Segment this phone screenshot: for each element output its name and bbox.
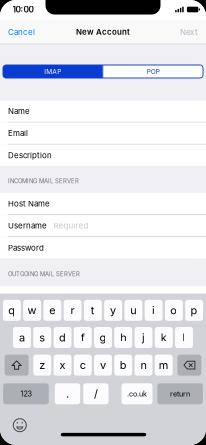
button[interactable]: f — [74, 327, 92, 348]
button[interactable]: p — [185, 300, 203, 321]
staticText: New Account — [76, 27, 130, 37]
staticText: OUTGOING MAIL SERVER — [8, 271, 80, 278]
staticText: j — [142, 331, 145, 344]
button[interactable]: Password — [0, 237, 206, 258]
button[interactable]: Emoji keyboard — [10, 415, 30, 435]
button[interactable]: . — [55, 383, 80, 404]
button[interactable]: Delete — [177, 355, 201, 376]
button[interactable]: w — [23, 300, 41, 321]
button[interactable]: POP — [103, 65, 203, 78]
button[interactable]: l — [175, 327, 193, 348]
staticText: b — [120, 358, 127, 372]
button[interactable]: d — [53, 327, 71, 348]
button[interactable]: s — [33, 327, 51, 348]
staticText: q — [8, 304, 15, 317]
staticText: / — [94, 387, 98, 400]
staticText: 10:00 — [12, 4, 33, 14]
button[interactable]: z — [33, 355, 51, 376]
staticText: Email — [8, 128, 28, 138]
staticText: k — [161, 331, 167, 344]
staticText: o — [170, 304, 177, 317]
button[interactable]: .co.uk — [121, 383, 152, 404]
staticText: w — [28, 304, 37, 317]
button[interactable]: r — [64, 300, 82, 321]
button[interactable]: / — [83, 383, 108, 404]
staticText: t — [91, 304, 95, 317]
staticText: IMAP — [44, 67, 61, 75]
staticText: .co.uk — [127, 389, 147, 398]
button[interactable]: IMAP — [3, 65, 102, 78]
staticText: n — [140, 358, 146, 372]
staticText: e — [49, 304, 55, 317]
staticText: c — [80, 358, 86, 372]
button[interactable]: x — [54, 355, 71, 376]
staticText: Username — [8, 221, 47, 230]
staticText: Required — [53, 221, 88, 230]
staticText: v — [100, 358, 106, 372]
staticText: a — [19, 331, 25, 344]
staticText: return — [170, 389, 190, 398]
staticText: p — [191, 304, 198, 317]
staticText: f — [81, 331, 85, 344]
staticText: h — [120, 331, 126, 344]
staticText: Host Name — [8, 292, 50, 302]
staticText: Password — [8, 243, 44, 252]
staticText: POP — [147, 67, 160, 75]
staticText: u — [130, 304, 136, 317]
button[interactable]: c — [74, 355, 92, 376]
button[interactable]: Name — [0, 100, 206, 122]
staticText: Cancel — [8, 27, 35, 37]
button[interactable]: Email — [0, 123, 206, 144]
button[interactable]: Next — [170, 20, 198, 44]
button[interactable]: m — [155, 355, 173, 376]
button[interactable]: e — [43, 300, 61, 321]
button[interactable]: i — [145, 300, 163, 321]
staticText: l — [182, 331, 185, 344]
staticText: r — [71, 304, 75, 317]
staticText: x — [59, 358, 65, 372]
button[interactable]: t — [84, 300, 102, 321]
button[interactable]: Shift — [5, 355, 29, 376]
staticText: y — [110, 304, 116, 317]
button[interactable]: 123 — [3, 383, 49, 404]
staticText: z — [39, 358, 45, 372]
staticText: g — [99, 331, 106, 344]
staticText: . — [66, 387, 69, 400]
button[interactable]: b — [114, 355, 132, 376]
staticText: Host Name — [8, 199, 50, 208]
button[interactable]: a — [13, 327, 31, 348]
button[interactable]: Cancel — [8, 20, 44, 44]
staticText: INCOMING MAIL SERVER — [8, 178, 79, 185]
button[interactable]: h — [114, 327, 132, 348]
staticText: s — [39, 331, 45, 344]
staticText: 123 — [20, 389, 31, 398]
button[interactable]: y — [104, 300, 122, 321]
staticText: d — [59, 331, 66, 344]
button[interactable]: Host Name — [0, 193, 206, 214]
button[interactable]: n — [135, 355, 152, 376]
staticText: i — [152, 304, 155, 317]
button[interactable]: return — [157, 383, 203, 404]
button[interactable]: q — [3, 300, 21, 321]
button[interactable]: j — [134, 327, 152, 348]
staticText: Description — [8, 150, 52, 160]
staticText: Name — [8, 106, 30, 116]
button[interactable]: o — [165, 300, 183, 321]
staticText: Next — [180, 27, 198, 37]
staticText: m — [159, 358, 169, 372]
button[interactable]: g — [94, 327, 112, 348]
button[interactable]: v — [94, 355, 112, 376]
button[interactable]: k — [155, 327, 173, 348]
button[interactable]: Username — [0, 215, 206, 236]
button[interactable]: Description — [0, 145, 206, 166]
button[interactable]: u — [124, 300, 142, 321]
